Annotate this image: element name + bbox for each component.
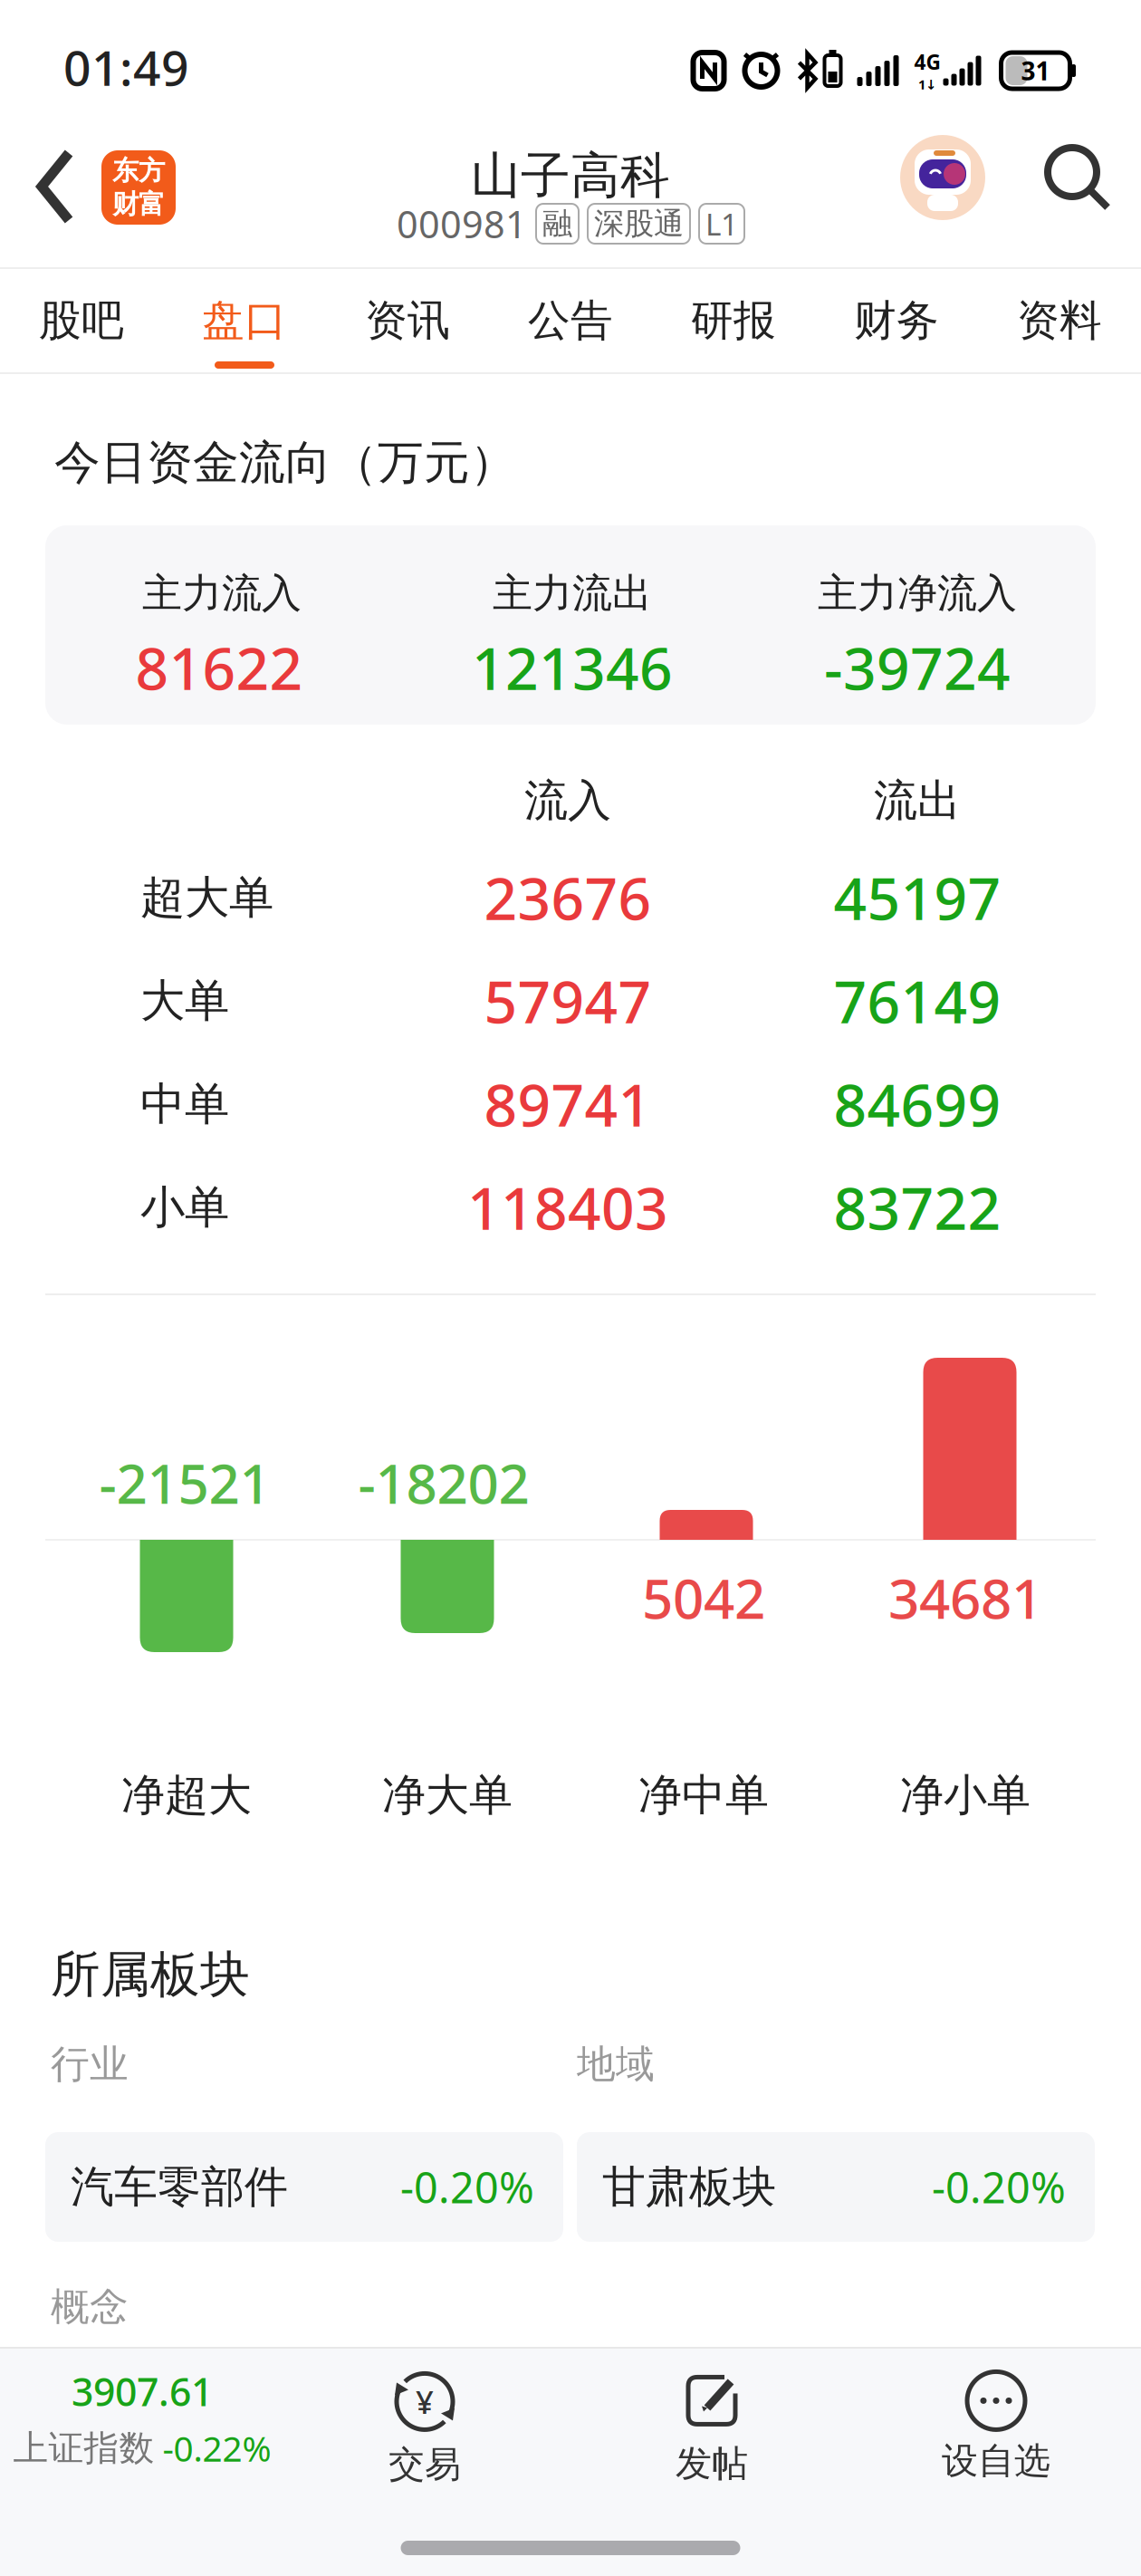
staticText: 财务: [854, 295, 939, 347]
staticText: 汽车零部件: [71, 2160, 288, 2214]
button[interactable]: 资讯: [326, 271, 489, 370]
staticText: 121346: [472, 629, 673, 706]
button[interactable]: 设自选: [896, 2350, 1096, 2504]
staticText: -21521: [99, 1447, 270, 1519]
staticText: 83722: [834, 1169, 1001, 1246]
staticText: 净小单: [900, 1769, 1031, 1822]
staticText: 东方: [112, 154, 165, 187]
button[interactable]: 研报: [652, 271, 815, 370]
staticText: 所属板块: [51, 1944, 250, 2005]
staticText: 融: [542, 205, 572, 242]
button[interactable]: 汽车零部件: [45, 2132, 563, 2242]
staticText: 57947: [484, 962, 652, 1039]
staticText: 设自选: [942, 2439, 1050, 2483]
button[interactable]: 3907.61: [0, 2346, 323, 2491]
staticText: 31: [1021, 54, 1050, 87]
button[interactable]: 智能助手: [900, 135, 985, 220]
staticText: 主力流出: [493, 569, 652, 618]
staticText: 流出: [874, 774, 961, 827]
staticText: 概念: [51, 2283, 129, 2331]
button[interactable]: 资料: [978, 271, 1141, 370]
button[interactable]: ¥: [325, 2350, 524, 2504]
staticText: 流入: [524, 774, 611, 827]
button[interactable]: 财务: [815, 271, 978, 370]
staticText: 山子高科: [471, 145, 670, 206]
staticText: 89741: [484, 1066, 652, 1143]
staticText: L1: [705, 204, 738, 244]
staticText: 甘肃板块: [602, 2160, 776, 2214]
staticText: 深股通: [594, 205, 684, 242]
staticText: 财富: [112, 188, 165, 221]
staticText: 交易: [388, 2442, 461, 2487]
staticText: 股吧: [39, 295, 124, 347]
staticText: 1↓: [918, 75, 936, 93]
staticText: 中单: [140, 1077, 229, 1132]
staticText: 118403: [467, 1169, 668, 1246]
staticText: 主力净流入: [818, 569, 1017, 618]
staticText: 公告: [528, 295, 613, 347]
button[interactable]: 甘肃板块: [577, 2132, 1095, 2242]
staticText: ¥: [416, 2381, 434, 2422]
staticText: -0.20%: [400, 2159, 534, 2215]
staticText: 3907.61: [72, 2365, 213, 2417]
staticText: 净超大: [121, 1769, 252, 1822]
button[interactable]: Back: [24, 147, 88, 228]
staticText: 地域: [577, 2041, 655, 2088]
button[interactable]: 东方财富: [101, 150, 176, 225]
staticText: 34681: [888, 1562, 1042, 1634]
staticText: 上证指数: [13, 2427, 154, 2470]
staticText: 5042: [642, 1562, 765, 1634]
staticText: 研报: [691, 295, 776, 347]
staticText: 盘口: [202, 295, 287, 347]
staticText: 主力流入: [142, 569, 302, 618]
staticText: 净大单: [382, 1769, 513, 1822]
staticText: 今日资金流向（万元）: [54, 435, 516, 491]
staticText: -39724: [824, 629, 1011, 706]
button[interactable]: Search: [1044, 144, 1111, 211]
button[interactable]: 公告: [489, 271, 652, 370]
staticText: -18202: [358, 1447, 529, 1519]
staticText: -0.22%: [163, 2425, 271, 2471]
staticText: 81622: [135, 629, 303, 706]
staticText: 23676: [484, 859, 652, 936]
staticText: 84699: [834, 1066, 1001, 1143]
staticText: 45197: [834, 859, 1001, 936]
staticText: -0.20%: [932, 2159, 1066, 2215]
button[interactable]: 股吧: [0, 271, 163, 370]
staticText: 4G: [914, 48, 940, 75]
staticText: 资讯: [365, 295, 450, 347]
staticText: 大单: [140, 973, 229, 1028]
staticText: 小单: [140, 1180, 229, 1235]
staticText: 超大单: [140, 870, 273, 925]
staticText: 76149: [834, 962, 1001, 1039]
button[interactable]: 发帖: [612, 2350, 811, 2504]
staticText: 01:49: [63, 35, 189, 99]
staticText: 行业: [51, 2041, 129, 2088]
button[interactable]: 盘口: [163, 271, 326, 370]
staticText: 资料: [1017, 295, 1102, 347]
staticText: 发帖: [676, 2441, 748, 2486]
staticText: 净中单: [638, 1769, 769, 1822]
staticText: 000981: [397, 199, 527, 249]
